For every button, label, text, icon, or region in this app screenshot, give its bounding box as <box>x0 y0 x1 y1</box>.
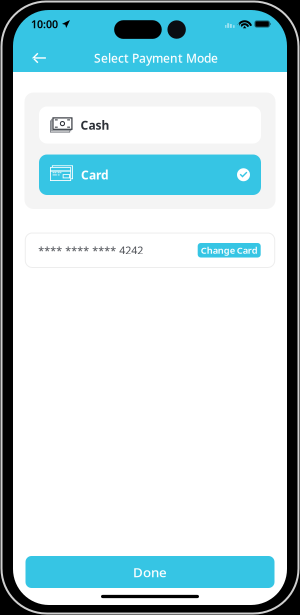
button[interactable]: Change Card <box>198 243 261 257</box>
button[interactable]: Card <box>39 154 261 195</box>
staticText: Cash <box>80 117 109 133</box>
staticText: Select Payment Mode <box>94 50 218 66</box>
staticText: 10:00 <box>31 17 58 31</box>
staticText: Change Card <box>201 244 258 256</box>
button[interactable]: Done <box>25 556 274 588</box>
button[interactable]: Cash <box>39 106 261 143</box>
staticText: Card <box>81 167 109 183</box>
staticText: **** **** **** 4242 <box>38 243 143 257</box>
button[interactable]: Back <box>25 45 53 71</box>
staticText: Done <box>133 563 167 581</box>
